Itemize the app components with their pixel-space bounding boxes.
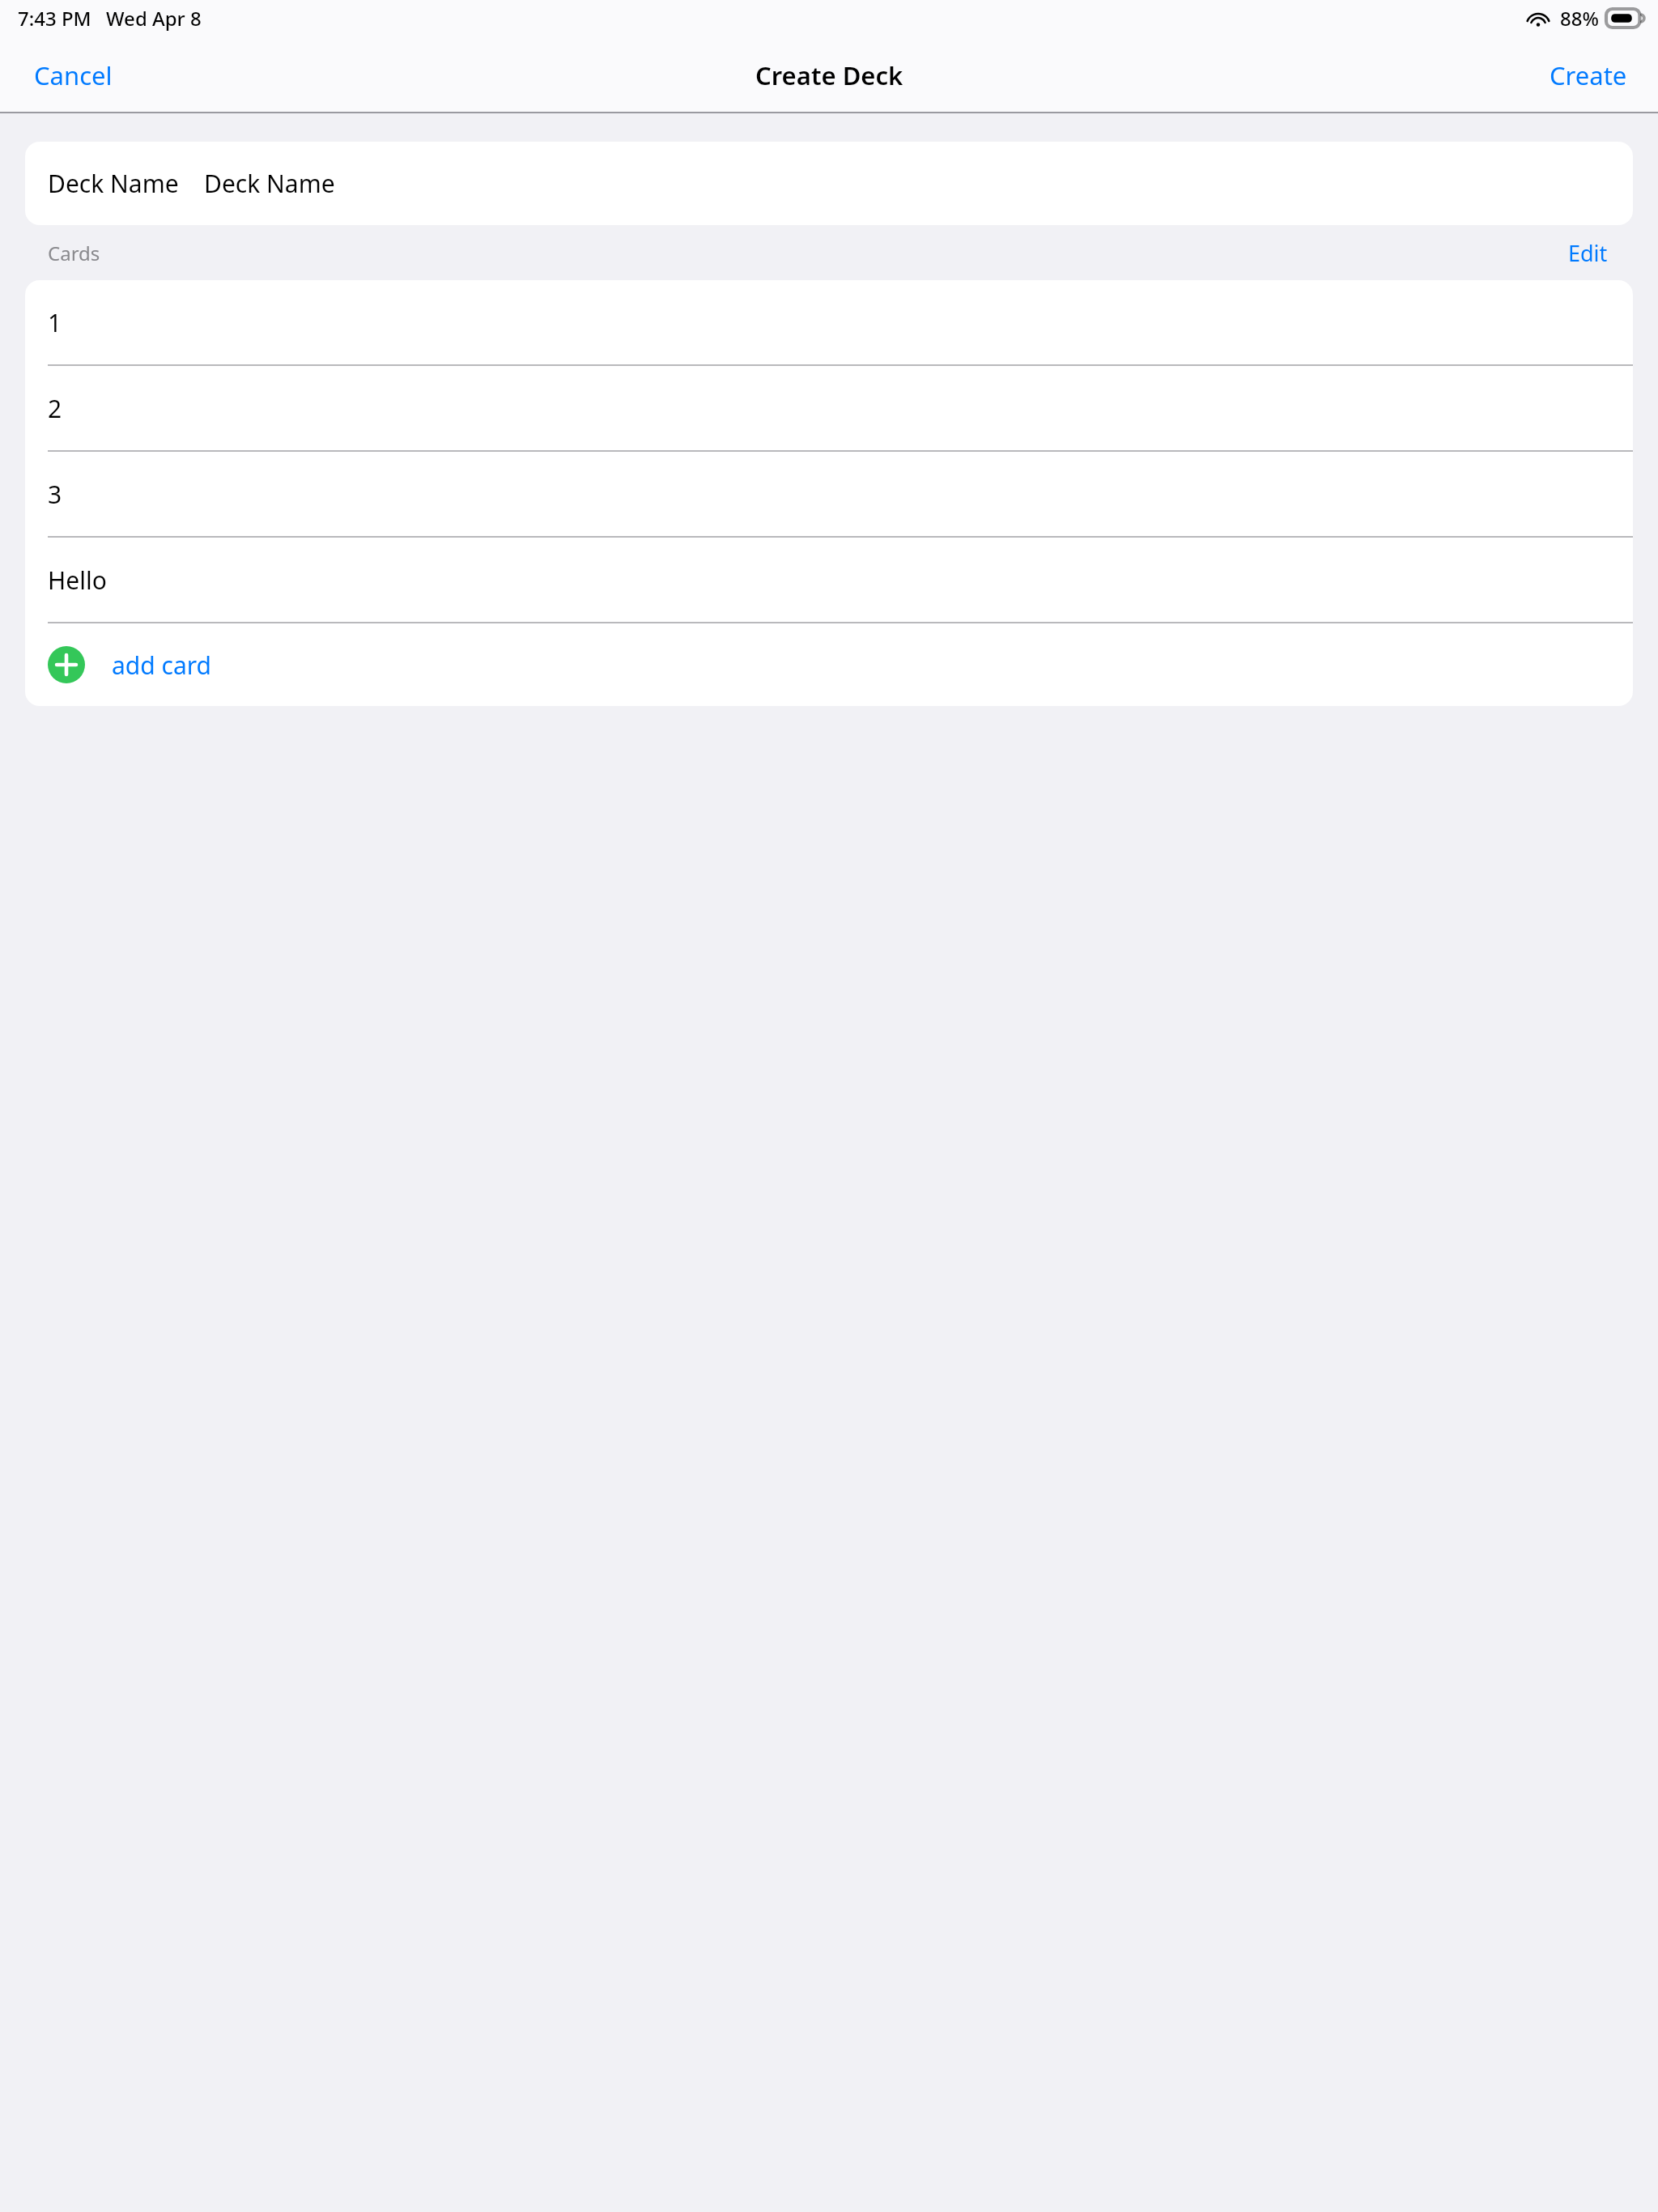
staticText: 88%: [1560, 5, 1599, 32]
button[interactable]: Hello: [25, 538, 1633, 622]
staticText: 1: [48, 306, 62, 339]
staticText: Hello: [48, 564, 107, 597]
staticText: Cards: [48, 240, 100, 266]
staticText: 7:43 PM: [18, 5, 91, 32]
other: Add card: [48, 646, 85, 683]
staticText: Cancel: [34, 58, 113, 92]
staticText: Wed Apr 8: [106, 5, 202, 32]
staticText: Deck Name: [204, 167, 335, 200]
button[interactable]: Deck Name: [25, 142, 1633, 225]
staticText: Create: [1550, 58, 1627, 92]
button[interactable]: Add card: [25, 623, 1633, 706]
button[interactable]: 2: [25, 366, 1633, 450]
button[interactable]: 3: [25, 452, 1633, 536]
staticText: 3: [48, 478, 62, 511]
staticText: Deck Name: [48, 167, 179, 200]
button[interactable]: Cancel: [24, 50, 122, 100]
button[interactable]: Edit: [1565, 235, 1611, 271]
staticText: 2: [48, 392, 62, 425]
button[interactable]: 1: [25, 280, 1633, 364]
button[interactable]: Create: [1540, 50, 1637, 100]
staticText: add card: [112, 649, 211, 682]
staticText: Edit: [1568, 238, 1608, 268]
staticText: Create Deck: [755, 58, 903, 92]
